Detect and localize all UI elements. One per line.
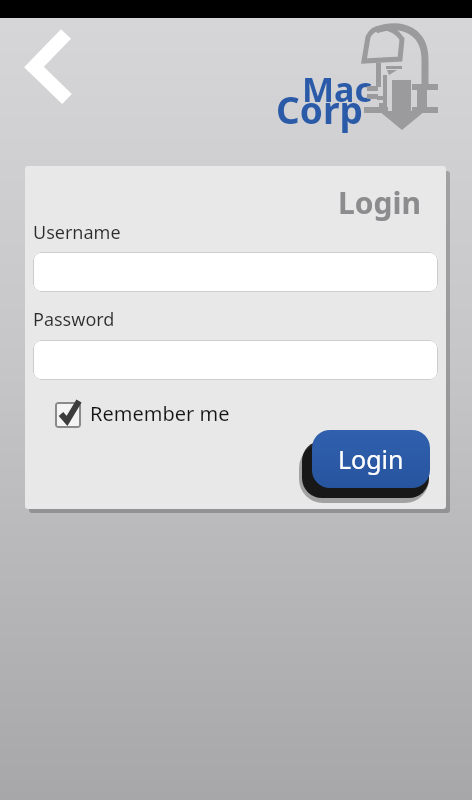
staticText: Remember me xyxy=(90,400,230,427)
button[interactable]: Login xyxy=(312,430,430,488)
button[interactable]: Remember me xyxy=(55,399,230,428)
button[interactable] xyxy=(33,252,438,292)
button[interactable] xyxy=(33,340,438,380)
staticText: Login xyxy=(338,182,421,223)
staticText: Username xyxy=(33,220,121,245)
button[interactable] xyxy=(22,24,82,110)
staticText: Mac xyxy=(302,66,372,112)
staticText: Corp xyxy=(276,84,363,134)
staticText: Password xyxy=(33,307,115,332)
staticText: Login xyxy=(338,442,404,476)
